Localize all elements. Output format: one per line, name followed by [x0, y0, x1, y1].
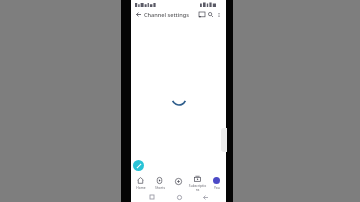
button[interactable]: Cast	[197, 10, 206, 19]
button[interactable]: You	[207, 175, 226, 191]
button[interactable]: Home	[131, 175, 150, 191]
staticText: Shorts	[155, 185, 165, 189]
button[interactable]: Back	[134, 10, 143, 19]
button[interactable]: Edit	[133, 160, 144, 171]
button[interactable]: Subscriptions	[188, 175, 207, 191]
button[interactable]: Home	[174, 192, 184, 202]
button[interactable]: Back	[200, 192, 210, 202]
staticText: Subscriptions	[188, 183, 207, 191]
staticText: Channel settings	[144, 11, 189, 19]
staticText: You	[214, 185, 220, 189]
button[interactable]: More options	[215, 11, 223, 19]
button[interactable]: Shorts	[150, 175, 169, 191]
button[interactable]: Recents	[147, 192, 157, 202]
button[interactable]: Search	[206, 10, 215, 19]
staticText: Home	[136, 185, 146, 189]
button[interactable]: Create	[169, 175, 188, 191]
